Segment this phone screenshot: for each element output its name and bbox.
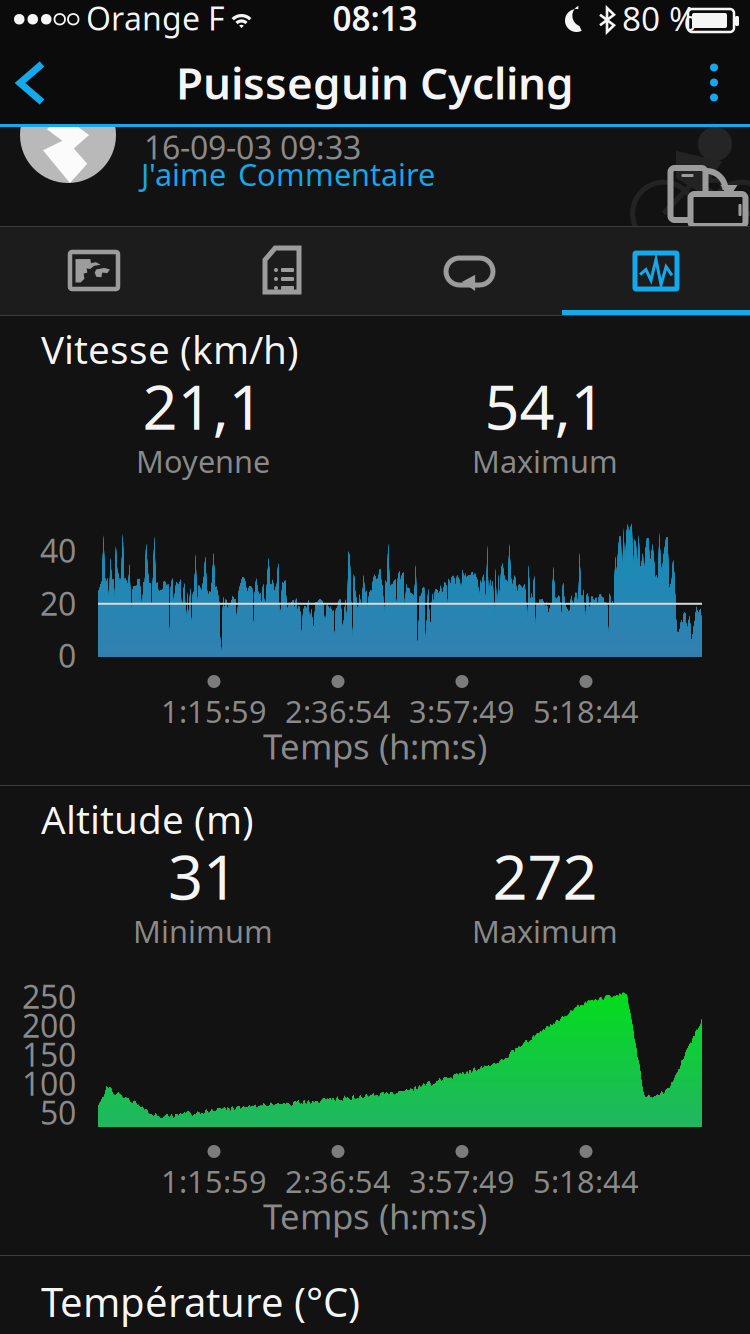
button[interactable]: More options <box>678 40 750 125</box>
button[interactable]: Details <box>187 227 375 315</box>
staticText: 3:57:49 <box>409 1161 515 1201</box>
button[interactable]: Back <box>0 40 74 125</box>
staticText: 1:15:59 <box>161 1161 267 1201</box>
staticText: Minimum <box>133 911 273 951</box>
staticText: 0 <box>58 634 76 676</box>
staticText: Puisseguin Cycling <box>176 53 574 112</box>
staticText: 08:13 <box>332 0 417 40</box>
staticText: 1:15:59 <box>161 691 267 731</box>
staticText: 80 % <box>622 0 697 40</box>
staticText: Temps (h:m:s) <box>263 723 487 769</box>
staticText: 31 <box>168 835 238 917</box>
staticText: 2:36:54 <box>285 691 391 731</box>
staticText: Altitude (m) <box>41 793 254 845</box>
staticText: Temps (h:m:s) <box>263 1193 487 1239</box>
button[interactable]: J'aime <box>141 154 245 194</box>
staticText: 100 <box>22 1062 76 1104</box>
staticText: Maximum <box>472 911 618 951</box>
staticText: 5:18:44 <box>533 691 639 731</box>
button[interactable]: Commentaire <box>238 154 488 194</box>
staticText: Orange F <box>86 0 225 39</box>
staticText: 200 <box>22 1004 76 1046</box>
staticText: Maximum <box>472 441 618 481</box>
staticText: 21,1 <box>142 365 263 447</box>
staticText: 20 <box>40 582 76 624</box>
staticText: Moyenne <box>136 441 270 481</box>
staticText: 150 <box>22 1033 76 1075</box>
staticText: 3:57:49 <box>409 691 515 731</box>
staticText: 40 <box>40 529 76 571</box>
staticText: 2:36:54 <box>285 1161 391 1201</box>
staticText: Commentaire <box>238 154 435 194</box>
staticText: J'aime <box>141 154 226 194</box>
staticText: Vitesse (km/h) <box>41 323 299 375</box>
button[interactable]: Map <box>0 227 187 315</box>
staticText: 16-09-03 09:33 <box>144 126 361 168</box>
staticText: Température (°C) <box>41 1275 360 1328</box>
button[interactable]: Rotate device <box>648 159 736 229</box>
button[interactable]: Charts <box>562 227 750 315</box>
staticText: 272 <box>492 835 597 917</box>
staticText: 250 <box>22 975 76 1017</box>
staticText: 5:18:44 <box>533 1161 639 1201</box>
staticText: 50 <box>40 1091 76 1133</box>
button[interactable]: Laps <box>375 227 563 315</box>
staticText: 54,1 <box>484 365 605 447</box>
